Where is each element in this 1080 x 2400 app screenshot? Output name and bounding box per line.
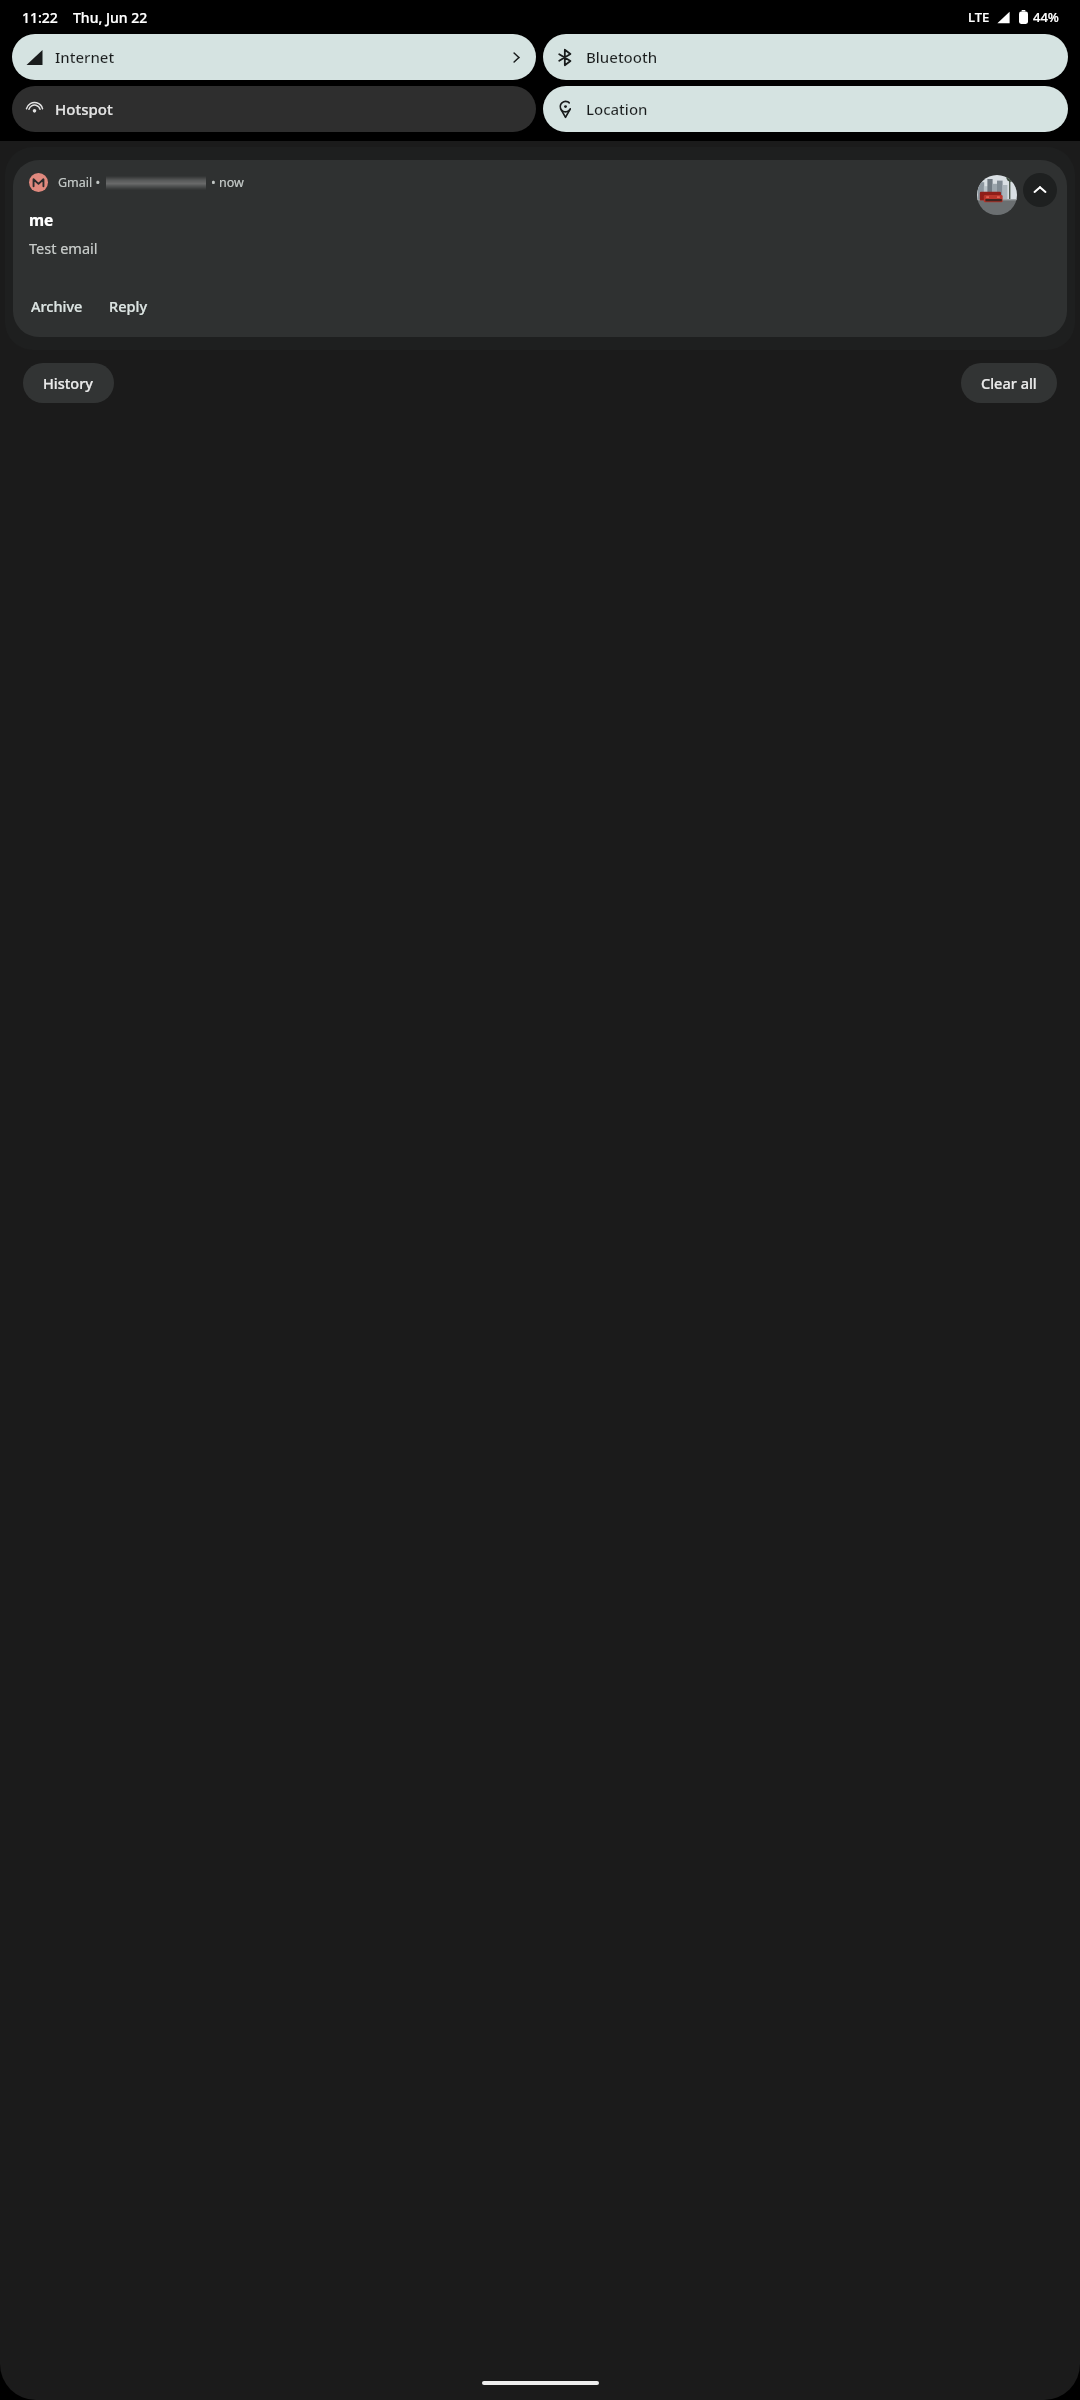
staticText: Test email <box>29 238 98 258</box>
staticText: Internet <box>55 47 115 67</box>
button[interactable]: Location <box>543 86 1068 132</box>
staticText: me <box>29 209 54 230</box>
staticText: Archive <box>31 296 83 316</box>
staticText: 11:22 <box>22 8 58 27</box>
button[interactable]: Bluetooth <box>543 34 1068 80</box>
staticText: Location <box>586 99 648 119</box>
button[interactable]: Internet <box>12 34 536 80</box>
staticText: Gmail • <box>58 174 101 191</box>
button[interactable]: Clear all <box>961 363 1057 403</box>
button[interactable]: Reply <box>107 291 150 321</box>
staticText: Thu, Jun 22 <box>73 8 148 27</box>
staticText: History <box>43 373 94 393</box>
staticText: Clear all <box>981 373 1037 393</box>
staticText: 44% <box>1033 8 1059 26</box>
staticText: Bluetooth <box>586 47 658 67</box>
button[interactable]: Archive <box>29 291 85 321</box>
button[interactable]: History <box>23 363 114 403</box>
staticText: Hotspot <box>55 99 113 119</box>
button[interactable]: Hotspot <box>12 86 536 132</box>
button[interactable]: Collapse notification <box>1023 173 1057 207</box>
staticText: Reply <box>109 296 148 316</box>
staticText: • now <box>211 174 244 191</box>
button[interactable]: Gmail • <box>13 160 1067 337</box>
staticText: LTE <box>968 8 990 26</box>
